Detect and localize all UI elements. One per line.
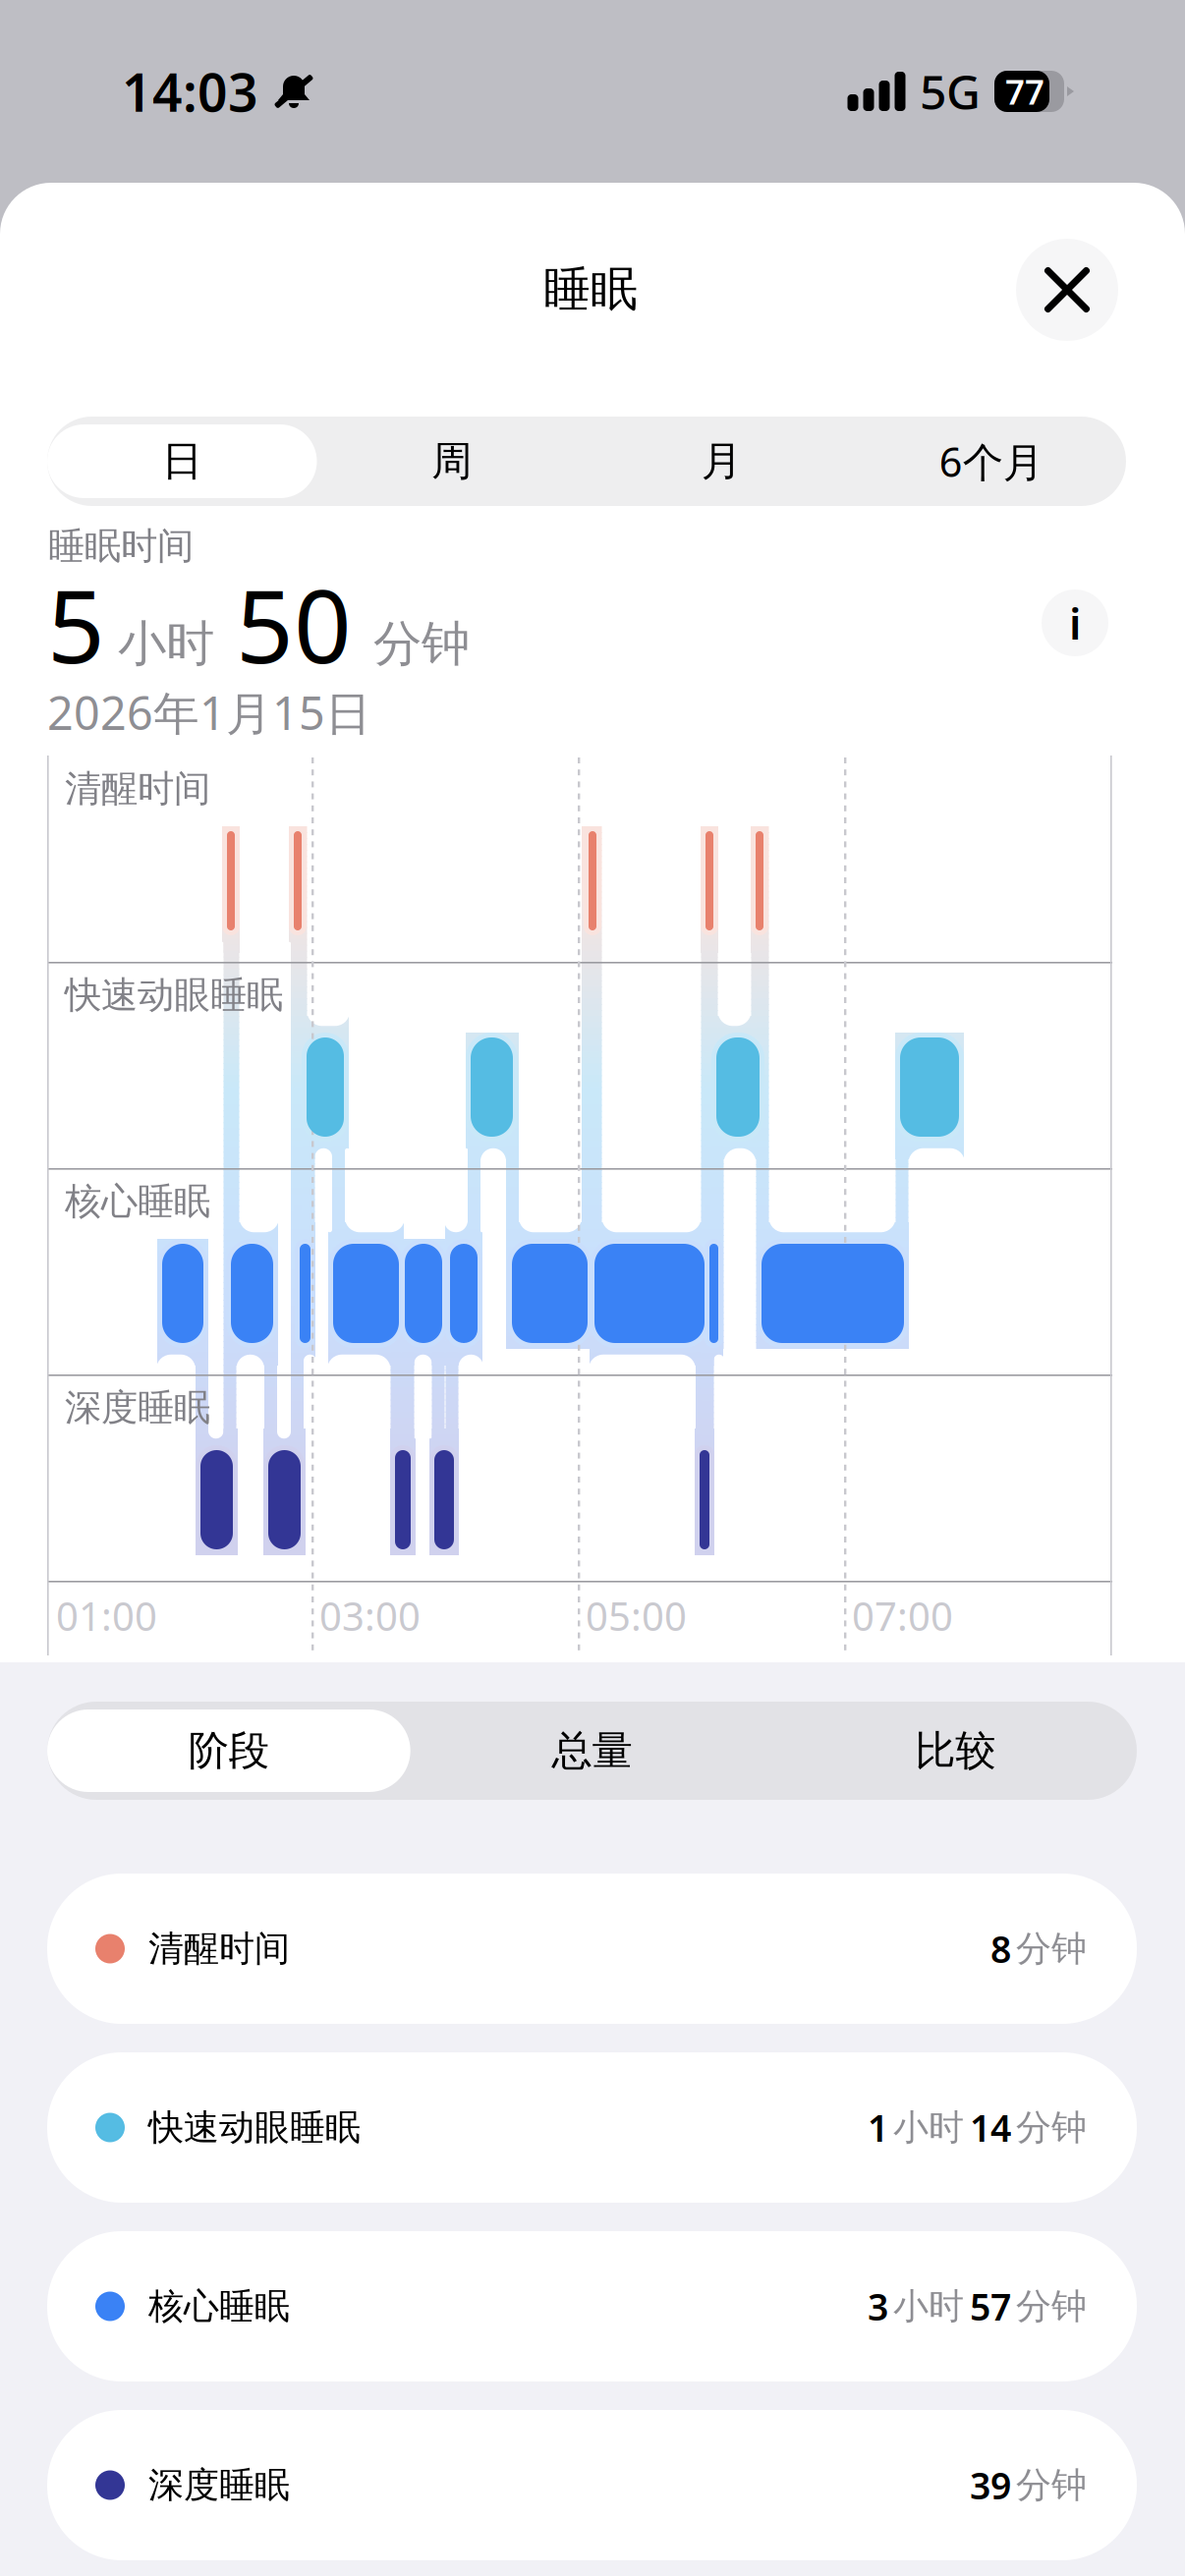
- button[interactable]: 信息: [1042, 589, 1108, 656]
- staticText: 深度睡眠: [148, 2463, 290, 2507]
- staticText: 8: [990, 1924, 1011, 1973]
- staticText: 阶段: [188, 1726, 269, 1776]
- button[interactable]: 6个月: [856, 417, 1126, 506]
- button[interactable]: 核心睡眠: [47, 2231, 1137, 2381]
- staticText: 总量: [552, 1726, 632, 1776]
- staticText: 周: [432, 436, 472, 486]
- staticText: 5: [47, 557, 105, 691]
- staticText: 快速动眼睡眠: [148, 2106, 361, 2149]
- staticText: 77: [1005, 69, 1044, 114]
- button[interactable]: 比较: [774, 1702, 1137, 1800]
- button[interactable]: 清醒时间: [47, 1874, 1137, 2024]
- staticText: 01:00: [56, 1590, 157, 1642]
- staticText: 小时: [893, 2106, 964, 2149]
- staticText: 57: [970, 2282, 1011, 2331]
- staticText: 03:00: [319, 1590, 421, 1642]
- staticText: 1: [868, 2103, 888, 2152]
- staticText: 05:00: [586, 1590, 687, 1642]
- staticText: 深度睡眠: [65, 1385, 210, 1430]
- button[interactable]: 阶段: [47, 1702, 410, 1800]
- button[interactable]: 快速动眼睡眠: [47, 2052, 1137, 2203]
- staticText: 睡眠: [543, 260, 638, 318]
- button[interactable]: 总量: [410, 1702, 774, 1800]
- staticText: 清醒时间: [148, 1927, 290, 1970]
- staticText: 分钟: [1016, 2106, 1087, 2149]
- staticText: 分钟: [1016, 2463, 1087, 2507]
- staticText: 07:00: [852, 1590, 953, 1642]
- staticText: 14: [970, 2103, 1011, 2152]
- staticText: 分钟: [1016, 1927, 1087, 1970]
- staticText: 39: [970, 2461, 1011, 2509]
- staticText: 分钟: [373, 614, 470, 674]
- staticText: 睡眠时间: [48, 524, 194, 569]
- staticText: 分钟: [1016, 2285, 1087, 2328]
- staticText: 月: [701, 436, 742, 486]
- staticText: 核心睡眠: [148, 2285, 290, 2328]
- staticText: 日: [162, 436, 202, 486]
- staticText: 小时: [118, 614, 214, 674]
- staticText: 3: [868, 2282, 888, 2331]
- button[interactable]: 周: [317, 417, 587, 506]
- button[interactable]: 深度睡眠: [47, 2410, 1137, 2560]
- staticText: 快速动眼睡眠: [65, 973, 283, 1018]
- staticText: 50: [236, 557, 352, 691]
- staticText: 比较: [915, 1726, 996, 1776]
- staticText: 14:03: [122, 57, 258, 126]
- staticText: 小时: [893, 2285, 964, 2328]
- staticText: 清醒时间: [65, 766, 210, 811]
- staticText: 5G: [920, 60, 981, 123]
- staticText: 核心睡眠: [65, 1179, 210, 1224]
- staticText: i: [1069, 594, 1081, 652]
- button[interactable]: 关闭: [1016, 239, 1118, 341]
- staticText: 2026年1月15日: [47, 682, 371, 743]
- button[interactable]: 月: [587, 417, 856, 506]
- button[interactable]: 日: [47, 417, 317, 506]
- staticText: 6个月: [939, 434, 1043, 488]
